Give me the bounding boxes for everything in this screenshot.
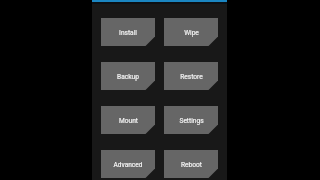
staticText: Restore bbox=[180, 73, 203, 81]
button[interactable]: Restore bbox=[164, 62, 218, 90]
button[interactable]: Backup bbox=[101, 62, 155, 90]
staticText: Install bbox=[119, 29, 137, 37]
button[interactable]: Settings bbox=[164, 106, 218, 134]
staticText: Advanced bbox=[113, 161, 143, 169]
staticText: Wipe bbox=[184, 29, 199, 37]
staticText: Mount bbox=[119, 117, 138, 125]
button[interactable]: Mount bbox=[101, 106, 155, 134]
staticText: Backup bbox=[117, 73, 139, 81]
button[interactable]: Install bbox=[101, 18, 155, 46]
staticText: Settings bbox=[179, 117, 204, 125]
staticText: Reboot bbox=[181, 161, 202, 169]
button[interactable]: Advanced bbox=[101, 150, 155, 178]
button[interactable]: Wipe bbox=[164, 18, 218, 46]
button[interactable]: Reboot bbox=[164, 150, 218, 178]
